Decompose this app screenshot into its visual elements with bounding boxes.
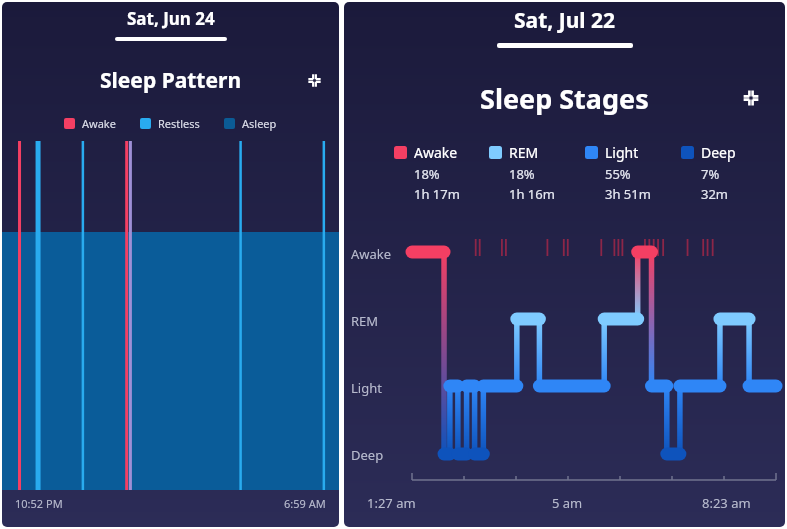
button[interactable] (344, 2, 785, 527)
staticText: Restless (158, 116, 200, 131)
staticText: 6:59 AM (284, 496, 326, 511)
button[interactable]: Asleep (224, 116, 277, 131)
staticText: REM (351, 312, 379, 330)
staticText: 32m (701, 185, 729, 203)
staticText: 10:52 PM (15, 496, 63, 511)
staticText: Sat, Jun 24 (127, 7, 215, 30)
staticText: 18% (414, 165, 440, 183)
staticText: 1h 17m (414, 185, 460, 203)
button[interactable]: REM (489, 143, 585, 203)
button[interactable]: Deep (681, 143, 777, 203)
staticText: Awake (82, 116, 116, 131)
button[interactable]: Collapse chart (301, 67, 327, 93)
staticText: Deep (351, 446, 384, 464)
staticText: 1:27 am (367, 494, 416, 512)
staticText: Sat, Jul 22 (514, 6, 616, 35)
staticText: Deep (701, 143, 736, 162)
staticText: REM (509, 143, 539, 162)
button[interactable]: Light (585, 143, 681, 203)
staticText: 7% (701, 165, 720, 183)
staticText: 5 am (552, 494, 583, 512)
staticText: Awake (414, 143, 458, 162)
staticText: Sleep Stages (480, 80, 649, 117)
staticText: Light (605, 143, 639, 162)
staticText: Sleep Pattern (100, 66, 242, 95)
button[interactable]: Restless (140, 116, 200, 131)
staticText: 1h 16m (509, 185, 555, 203)
button[interactable]: Awake (394, 143, 489, 203)
staticText: 18% (509, 165, 535, 183)
button[interactable]: Awake (64, 116, 116, 131)
button[interactable] (2, 141, 339, 490)
button[interactable]: Collapse chart (735, 82, 767, 114)
staticText: Asleep (242, 116, 277, 131)
staticText: 3h 51m (605, 185, 651, 203)
staticText: 8:23 am (702, 494, 751, 512)
staticText: Light (351, 379, 382, 397)
staticText: 55% (605, 165, 631, 183)
staticText: Awake (351, 245, 392, 263)
